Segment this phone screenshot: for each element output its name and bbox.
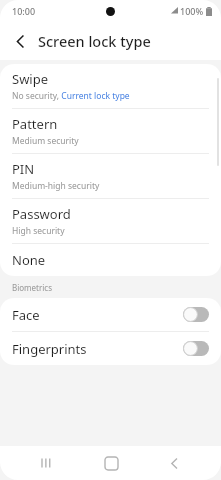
staticText: Fingerprints (12, 340, 87, 358)
staticText: High security (12, 225, 65, 237)
staticText: Medium security (12, 135, 79, 147)
staticText: Biometrics (12, 282, 53, 293)
staticText: 10:00 (12, 5, 36, 17)
button[interactable]: Home (94, 446, 128, 480)
staticText: Medium-high security (12, 180, 100, 192)
staticText: Password (12, 205, 71, 223)
staticText: None (12, 251, 46, 269)
staticText: No security, Current lock type (12, 90, 130, 102)
staticText: Screen lock type (38, 31, 151, 51)
button[interactable]: None (0, 244, 221, 276)
button[interactable]: Swipe (0, 64, 221, 108)
button[interactable]: Back (6, 27, 34, 55)
staticText: Pattern (12, 115, 58, 133)
button[interactable]: Pattern (0, 109, 221, 153)
staticText: Face (12, 306, 40, 324)
button[interactable]: Face (0, 298, 221, 331)
staticText: 100% (180, 5, 204, 17)
button[interactable]: PIN (0, 154, 221, 198)
button[interactable]: Back (157, 446, 191, 480)
staticText: Swipe (12, 70, 49, 88)
staticText: PIN (12, 160, 35, 178)
button[interactable]: Recents (30, 446, 64, 480)
button[interactable]: Password (0, 199, 221, 243)
button[interactable]: Fingerprints (0, 332, 221, 365)
